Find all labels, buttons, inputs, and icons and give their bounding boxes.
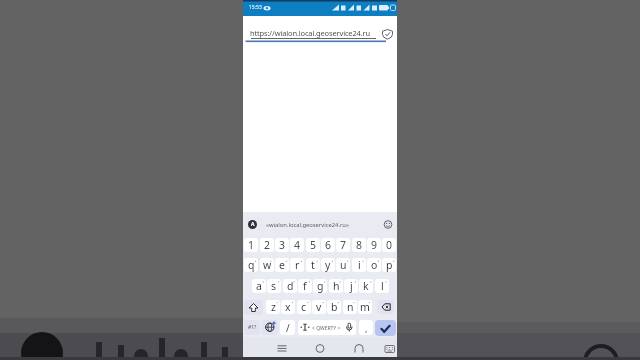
staticText: #1?: [248, 324, 257, 331]
button[interactable]: 6: [321, 238, 335, 252]
button[interactable]: [272, 340, 288, 356]
button[interactable]: r: [290, 258, 304, 272]
button[interactable]: 7: [336, 238, 350, 252]
button[interactable]: 4: [290, 238, 304, 252]
staticText: h: [333, 279, 340, 293]
button[interactable]: e: [275, 258, 289, 272]
button[interactable]: q: [244, 258, 258, 272]
button[interactable]: 1: [244, 238, 258, 252]
staticText: n: [347, 300, 354, 314]
staticText: 9: [371, 238, 378, 252]
button[interactable]: [377, 300, 394, 314]
staticText: v: [316, 300, 322, 314]
button[interactable]: j: [344, 279, 358, 293]
button[interactable]: m: [358, 300, 372, 314]
staticText: i: [358, 258, 361, 272]
button[interactable]: s: [267, 279, 281, 293]
button[interactable]: [298, 320, 356, 335]
button[interactable]: w: [260, 258, 274, 272]
button[interactable]: 5: [306, 238, 320, 252]
staticText: q: [248, 258, 255, 272]
button[interactable]: [312, 340, 328, 356]
staticText: j: [350, 279, 353, 293]
staticText: a: [256, 279, 262, 293]
staticText: 6: [325, 238, 332, 252]
button[interactable]: 0: [382, 238, 396, 252]
staticText: A: [251, 221, 255, 228]
button[interactable]: f: [298, 279, 312, 293]
staticText: 5: [310, 238, 317, 252]
button[interactable]: n: [343, 300, 357, 314]
button[interactable]: v: [312, 300, 326, 314]
staticText: ,: [365, 322, 368, 334]
staticText: 3: [279, 238, 286, 252]
button[interactable]: z: [266, 300, 280, 314]
staticText: k: [363, 279, 369, 293]
button[interactable]: d: [283, 279, 297, 293]
button[interactable]: b: [327, 300, 341, 314]
staticText: https://wialon.local.geoservice24.ru: [250, 28, 371, 38]
button[interactable]: 9: [367, 238, 381, 252]
button[interactable]: a: [252, 279, 266, 293]
staticText: m: [360, 300, 370, 314]
staticText: l: [381, 279, 384, 293]
staticText: s: [271, 279, 277, 293]
staticText: 7: [340, 238, 347, 252]
staticText: /: [286, 321, 290, 335]
staticText: b: [331, 300, 338, 314]
staticText: f: [303, 279, 307, 293]
button[interactable]: c: [297, 300, 311, 314]
staticText: e: [279, 258, 285, 272]
button[interactable]: #1?: [244, 320, 260, 335]
staticText: «wialon.local.geoservice24.ru»: [266, 221, 349, 229]
staticText: x: [285, 300, 291, 314]
button[interactable]: [262, 320, 278, 335]
staticText: p: [386, 258, 393, 272]
staticText: g: [317, 279, 324, 293]
button[interactable]: p: [382, 258, 396, 272]
button[interactable]: o: [367, 258, 381, 272]
button[interactable]: «wialon.local.geoservice24.ru»: [252, 218, 362, 231]
button[interactable]: [375, 320, 396, 336]
staticText: < QWERTY >: [312, 325, 341, 332]
staticText: w: [263, 258, 272, 272]
button[interactable]: y: [321, 258, 335, 272]
staticText: 4: [294, 238, 301, 252]
button[interactable]: x: [281, 300, 295, 314]
button[interactable]: h: [329, 279, 343, 293]
button[interactable]: A: [248, 220, 257, 229]
button[interactable]: [351, 340, 367, 356]
button[interactable]: [243, 337, 397, 357]
staticText: d: [287, 279, 294, 293]
button[interactable]: k: [359, 279, 373, 293]
button[interactable]: l: [375, 279, 389, 293]
staticText: r: [295, 258, 300, 272]
staticText: 8: [356, 238, 363, 252]
staticText: t: [311, 258, 315, 272]
staticText: y: [325, 258, 331, 272]
button[interactable]: t: [306, 258, 320, 272]
staticText: o: [371, 258, 378, 272]
button[interactable]: 3: [275, 238, 289, 252]
staticText: z: [271, 300, 276, 314]
button[interactable]: 8: [352, 238, 366, 252]
button[interactable]: 2: [260, 238, 274, 252]
staticText: 15:53: [249, 4, 262, 11]
button[interactable]: [244, 300, 263, 315]
button[interactable]: ,: [359, 320, 373, 335]
button[interactable]: g: [313, 279, 327, 293]
staticText: 1: [248, 238, 255, 252]
button[interactable]: u: [336, 258, 350, 272]
button[interactable]: [382, 340, 398, 356]
staticText: u: [340, 258, 347, 272]
staticText: 0: [386, 238, 393, 252]
button[interactable]: /: [280, 320, 295, 335]
staticText: 2: [264, 238, 271, 252]
button[interactable]: i: [352, 258, 366, 272]
staticText: c: [301, 300, 307, 314]
button[interactable]: [245, 24, 390, 44]
